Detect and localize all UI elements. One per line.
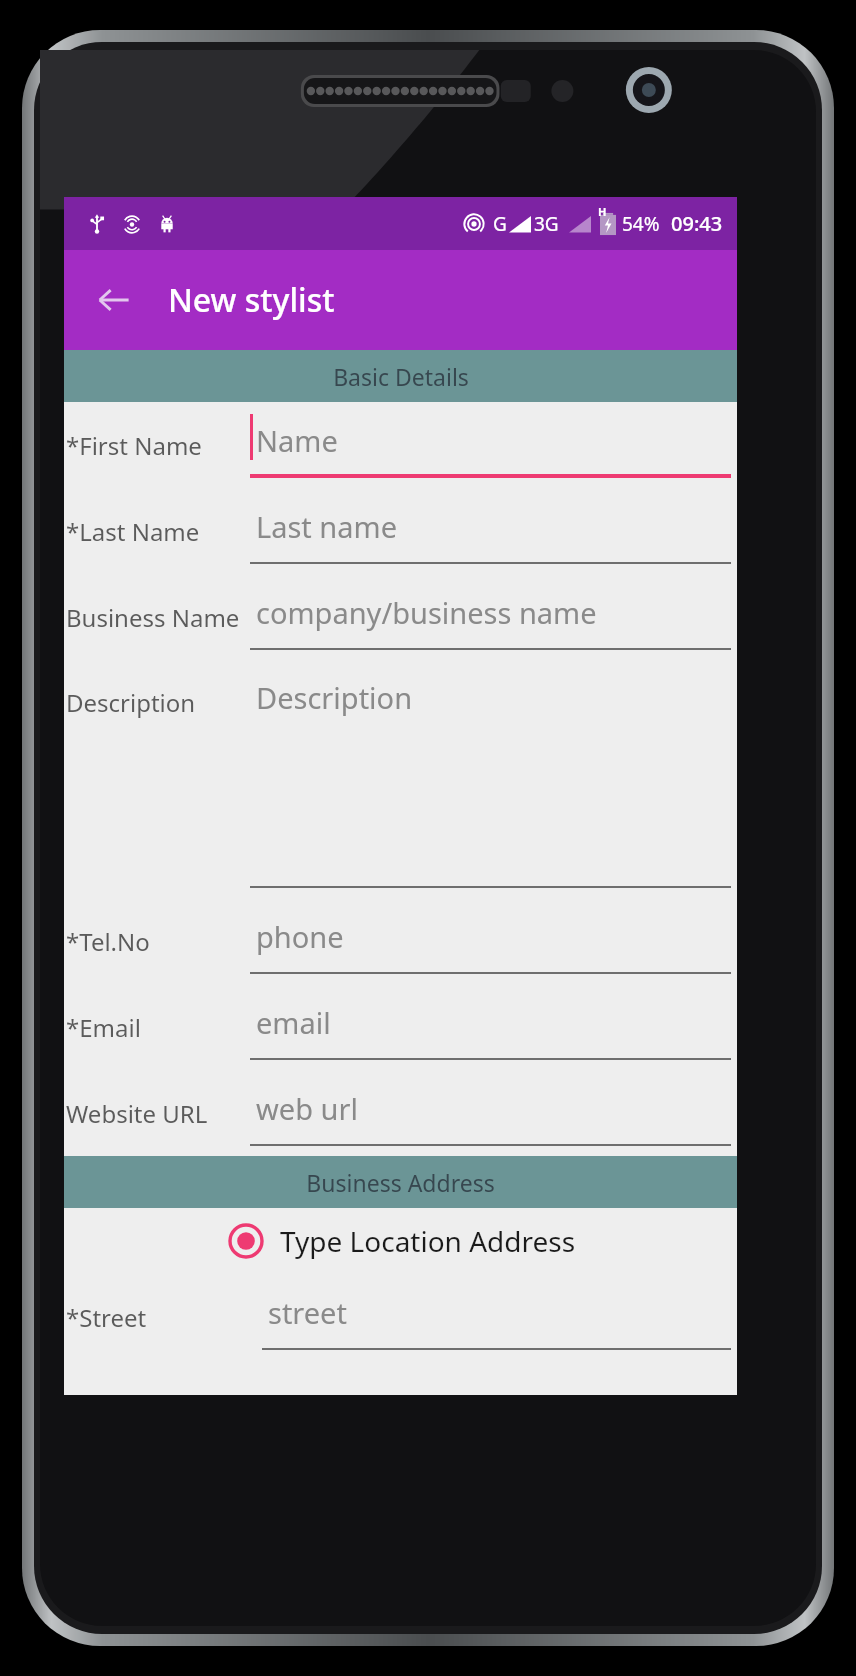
staticText: 09:43 <box>671 210 723 237</box>
staticText: Description <box>66 686 196 719</box>
staticText: company/business name <box>256 593 597 632</box>
staticText: *Last Name <box>66 515 200 548</box>
staticText: street <box>268 1293 347 1332</box>
button[interactable]: *First Name <box>64 402 737 488</box>
staticText: Business Address <box>306 1167 495 1198</box>
button[interactable]: Navigate up <box>88 274 140 326</box>
staticText: *Tel.No <box>66 925 150 958</box>
staticText: Type Location Address <box>280 1222 576 1260</box>
staticText: Description <box>256 678 413 717</box>
staticText: Website URL <box>66 1097 208 1130</box>
staticText: email <box>256 1003 331 1042</box>
staticText: Last name <box>256 507 398 546</box>
button[interactable]: *Email <box>64 984 737 1070</box>
staticText: Name <box>256 421 338 460</box>
staticText: 3G <box>534 211 559 237</box>
button[interactable]: *Tel.No <box>64 898 737 984</box>
staticText: 54% <box>622 211 660 237</box>
staticText: *Email <box>66 1011 141 1044</box>
staticText: *Street <box>66 1301 147 1334</box>
staticText: G <box>493 211 507 237</box>
staticText: Business Name <box>66 601 240 634</box>
button[interactable]: *Last Name <box>64 488 737 574</box>
staticText: H <box>598 204 607 219</box>
button[interactable]: *Street <box>64 1274 737 1360</box>
button[interactable]: Business Name <box>64 574 737 660</box>
staticText: web url <box>256 1089 358 1128</box>
staticText: New stylist <box>168 278 335 322</box>
button[interactable]: Website URL <box>64 1070 737 1156</box>
button[interactable]: Type Location Address <box>64 1208 737 1274</box>
staticText: Basic Details <box>333 361 469 392</box>
staticText: phone <box>256 917 344 956</box>
staticText: *First Name <box>66 429 202 462</box>
button[interactable]: Description <box>64 660 737 898</box>
